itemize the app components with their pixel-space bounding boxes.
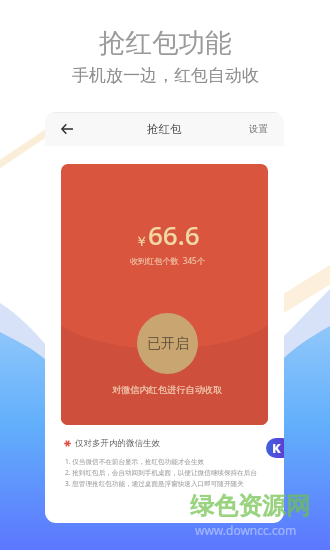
- staticText: K: [272, 439, 281, 457]
- staticText: 对微信内红包进行自动收取: [112, 384, 223, 396]
- staticText: 手机放一边，红包自动收: [72, 65, 259, 86]
- staticText: 抢红包: [147, 122, 182, 136]
- staticText: www.downcc.com: [195, 522, 297, 538]
- staticText: 设置: [249, 123, 268, 135]
- button[interactable]: 设置: [249, 123, 268, 135]
- button[interactable]: App logo: [266, 438, 284, 458]
- staticText: ￥: [135, 233, 148, 249]
- staticText: 1. 仅当微信不在前台显示，抢红包功能才会生效: [65, 457, 205, 466]
- staticText: 仅对多开内的微信生效: [75, 438, 160, 449]
- button[interactable]: 已开启: [137, 313, 198, 374]
- staticText: 绿色资源网: [190, 491, 310, 521]
- staticText: 66.6: [148, 217, 200, 252]
- button[interactable]: Back: [50, 112, 84, 146]
- staticText: 2. 抢到红包后，会自动回到手机桌面，以便让微信继续保持在后台: [65, 468, 257, 477]
- staticText: 收到红包个数 345个: [130, 255, 205, 266]
- staticText: 3. 想管理抢红包功能，通过桌面悬浮窗快速入口即可随开随关: [65, 479, 244, 488]
- staticText: 已开启: [147, 335, 189, 353]
- staticText: 抢红包功能: [99, 26, 232, 59]
